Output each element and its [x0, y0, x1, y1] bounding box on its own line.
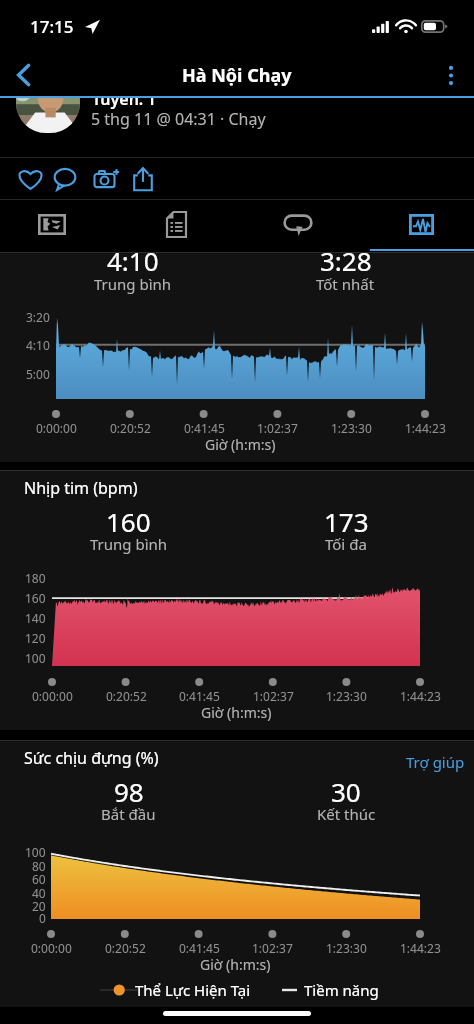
- staticText: 80: [32, 858, 46, 874]
- staticText: 0:20:52: [110, 420, 151, 436]
- staticText: 5 thg 11 @ 04:31 · Chạy: [91, 108, 266, 130]
- staticText: Trung bình: [90, 534, 168, 554]
- staticText: 0:00:00: [32, 688, 73, 704]
- staticText: 0:41:45: [179, 940, 220, 956]
- button[interactable]: Share: [124, 158, 162, 200]
- staticText: 3:20: [26, 309, 50, 325]
- button[interactable]: Add photo: [87, 158, 125, 200]
- staticText: 17:15: [30, 15, 74, 38]
- staticText: 0:00:00: [31, 940, 72, 956]
- staticText: 60: [32, 871, 46, 887]
- staticText: Sức chịu đựng (%): [24, 747, 159, 769]
- staticText: 0:41:45: [184, 420, 225, 436]
- staticText: Nhịp tim (bpm): [24, 477, 138, 499]
- staticText: Tiềm năng: [304, 980, 379, 1000]
- staticText: 140: [25, 610, 46, 626]
- staticText: 1:23:30: [326, 940, 367, 956]
- staticText: 1:44:23: [405, 420, 446, 436]
- staticText: 3:28: [320, 243, 372, 278]
- staticText: Giờ (h:m:s): [201, 703, 272, 722]
- staticText: 0: [39, 910, 46, 926]
- staticText: Tuyen. T: [92, 98, 157, 110]
- staticText: 4:10: [107, 243, 159, 278]
- staticText: Thể Lực Hiện Tại: [135, 980, 251, 1000]
- button[interactable]: Back: [0, 52, 46, 98]
- staticText: Giờ (h:m:s): [205, 435, 276, 454]
- staticText: 100: [25, 844, 46, 860]
- button[interactable]: Trợ giúp: [406, 752, 465, 772]
- staticText: 1:02:37: [252, 940, 293, 956]
- staticText: Tối đa: [325, 534, 367, 554]
- staticText: 0:20:52: [105, 940, 146, 956]
- staticText: 120: [25, 630, 46, 646]
- staticText: 173: [324, 504, 369, 539]
- staticText: Kết thúc: [317, 804, 376, 824]
- button[interactable]: Laps: [239, 200, 357, 249]
- staticText: 100: [25, 650, 46, 666]
- staticText: 0:41:45: [179, 688, 220, 704]
- staticText: 1:44:23: [400, 688, 441, 704]
- staticText: 98: [114, 774, 144, 809]
- staticText: 1:02:37: [253, 688, 294, 704]
- staticText: 40: [32, 885, 46, 901]
- staticText: 30: [331, 774, 361, 809]
- staticText: 160: [25, 590, 46, 606]
- staticText: Bắt đầu: [101, 804, 156, 824]
- staticText: 160: [106, 504, 151, 539]
- staticText: 0:20:52: [106, 688, 147, 704]
- staticText: Hà Nội Chạy: [182, 63, 292, 88]
- staticText: 1:44:23: [400, 940, 441, 956]
- staticText: Trung bình: [94, 274, 172, 294]
- staticText: 4:10: [26, 337, 50, 353]
- button[interactable]: Like: [11, 158, 49, 200]
- button[interactable]: Comment: [46, 158, 84, 200]
- staticText: Giờ (h:m:s): [200, 955, 271, 974]
- staticText: 1:23:30: [331, 420, 372, 436]
- button[interactable]: More options: [428, 52, 474, 98]
- button[interactable]: Splits: [117, 200, 235, 249]
- staticText: 1:02:37: [257, 420, 298, 436]
- button[interactable]: Map: [0, 200, 111, 249]
- staticText: Tốt nhất: [316, 274, 375, 294]
- button[interactable]: Charts: [362, 200, 474, 249]
- staticText: 5:00: [26, 366, 50, 382]
- staticText: 180: [25, 570, 46, 586]
- staticText: 0:00:00: [36, 420, 77, 436]
- staticText: 1:23:30: [326, 688, 367, 704]
- staticText: 20: [32, 898, 46, 914]
